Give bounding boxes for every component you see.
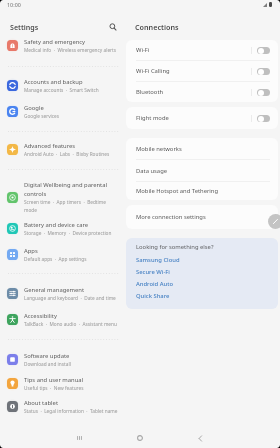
button[interactable]: Software update — [0, 347, 126, 372]
staticText: Useful tips · New features — [24, 385, 84, 391]
button[interactable]: Samsung Cloud — [126, 254, 278, 266]
staticText: Settings — [10, 22, 39, 32]
staticText: Android Auto · Labs · Bixby Routines — [24, 151, 110, 157]
staticText: Bluetooth — [136, 88, 164, 96]
button[interactable]: More connection settings — [126, 205, 278, 229]
button[interactable]: Digital Wellbeing and parental controls — [0, 178, 126, 216]
button[interactable]: Home — [130, 428, 150, 448]
button[interactable]: Search — [107, 21, 118, 32]
button[interactable]: Edit — [268, 214, 280, 229]
button[interactable]: Apps — [0, 242, 126, 267]
button[interactable]: Mobile networks — [126, 138, 278, 159]
button[interactable]: Wi-Fi — [257, 47, 270, 54]
staticText: Wi-Fi — [136, 46, 150, 54]
staticText: 10:00 — [7, 1, 21, 8]
button[interactable]: Wi-Fi Calling — [257, 68, 270, 75]
staticText: Status · Legal information · Tablet name — [24, 408, 118, 414]
button[interactable]: Bluetooth — [126, 82, 278, 102]
staticText: Data usage — [136, 167, 168, 175]
staticText: Wi-Fi Calling — [136, 67, 170, 75]
staticText: Apps — [24, 247, 38, 255]
staticText: About tablet — [24, 399, 58, 407]
staticText: Screen time · App timers · Bedtime mode — [24, 199, 106, 213]
button[interactable]: Recents — [69, 428, 89, 448]
button[interactable]: Battery and device care — [0, 216, 126, 241]
staticText: Download and install — [24, 361, 71, 367]
button[interactable]: About tablet — [0, 394, 126, 419]
staticText: Samsung Cloud — [136, 256, 180, 264]
staticText: Software update — [24, 352, 70, 360]
button[interactable]: Wi-Fi — [126, 40, 278, 60]
button[interactable]: Safety and emergency — [0, 33, 126, 58]
staticText: Tips and user manual — [24, 376, 84, 384]
button[interactable]: Wi-Fi Calling — [126, 61, 278, 81]
staticText: Battery and device care — [24, 221, 89, 229]
staticText: Flight mode — [136, 114, 169, 122]
staticText: Looking for something else? — [136, 243, 214, 251]
staticText: More connection settings — [136, 213, 206, 221]
staticText: Advanced features — [24, 142, 76, 150]
button[interactable]: Back — [190, 428, 210, 448]
button[interactable]: Flight mode — [257, 115, 270, 122]
staticText: TalkBack · Mono audio · Assistant menu — [24, 321, 117, 327]
staticText: Mobile Hotspot and Tethering — [136, 187, 219, 195]
staticText: Storage · Memory · Device protection — [24, 230, 112, 236]
button[interactable]: Advanced features — [0, 137, 126, 162]
staticText: Connections — [135, 22, 179, 32]
button[interactable]: Tips and user manual — [0, 371, 126, 396]
button[interactable]: Accessibility — [0, 307, 126, 332]
staticText: Google services — [24, 113, 60, 119]
staticText: Language and keyboard · Date and time — [24, 295, 116, 301]
button[interactable]: Android Auto — [126, 278, 278, 290]
button[interactable]: Accounts and backup — [0, 73, 126, 98]
button[interactable]: Bluetooth — [257, 89, 270, 96]
staticText: Medical info · Wireless emergency alerts — [24, 47, 117, 53]
button[interactable]: Google — [0, 99, 126, 124]
staticText: Manage accounts · Smart Switch — [24, 87, 99, 93]
button[interactable]: Secure Wi-Fi — [126, 266, 278, 278]
button[interactable]: Data usage — [126, 160, 278, 181]
staticText: Accounts and backup — [24, 78, 83, 86]
staticText: Safety and emergency — [24, 38, 86, 46]
staticText: Accessibility — [24, 312, 57, 320]
staticText: Secure Wi-Fi — [136, 268, 170, 276]
staticText: Digital Wellbeing and parental controls — [24, 181, 108, 198]
button[interactable]: General management — [0, 281, 126, 306]
staticText: Google — [24, 104, 44, 112]
staticText: Quick Share — [136, 292, 170, 300]
staticText: General management — [24, 286, 85, 294]
staticText: Mobile networks — [136, 145, 182, 153]
staticText: Default apps · App settings — [24, 256, 87, 262]
button[interactable]: Quick Share — [126, 290, 278, 302]
staticText: Android Auto — [136, 280, 174, 288]
button[interactable]: Mobile Hotspot and Tethering — [126, 182, 278, 200]
button[interactable]: Flight mode — [126, 107, 278, 129]
